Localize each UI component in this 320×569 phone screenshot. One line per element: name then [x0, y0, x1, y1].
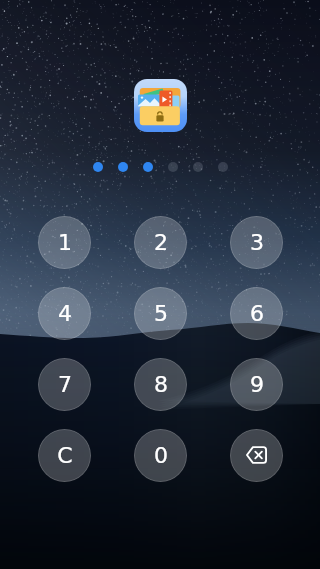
button[interactable]: 9	[230, 358, 283, 411]
button[interactable]: 7	[38, 358, 91, 411]
staticText: 3	[250, 230, 264, 256]
button[interactable]: 0	[134, 429, 187, 482]
button[interactable]: 5	[134, 287, 187, 340]
button[interactable]: Backspace	[230, 429, 283, 482]
staticText: 7	[58, 372, 72, 398]
staticText: 4	[58, 301, 72, 327]
other: App icon	[134, 79, 187, 132]
staticText: 8	[154, 372, 168, 398]
staticText: 9	[250, 372, 264, 398]
button[interactable]: 2	[134, 216, 187, 269]
button[interactable]: Clear	[38, 429, 91, 482]
staticText: 0	[154, 443, 168, 469]
button[interactable]: 1	[38, 216, 91, 269]
button[interactable]: 6	[230, 287, 283, 340]
button[interactable]: 8	[134, 358, 187, 411]
button[interactable]: 4	[38, 287, 91, 340]
staticText: 1	[58, 230, 72, 256]
staticText: C	[57, 443, 73, 469]
staticText: 6	[250, 301, 264, 327]
staticText: 5	[154, 301, 168, 327]
button[interactable]: 3	[230, 216, 283, 269]
staticText: 2	[154, 230, 168, 256]
